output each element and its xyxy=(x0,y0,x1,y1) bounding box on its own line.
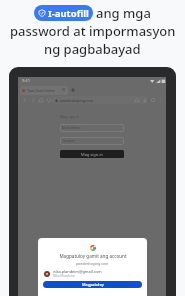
button[interactable]: Downloads xyxy=(141,96,149,104)
staticText: 9:41 xyxy=(22,78,30,83)
staticText: pwedeshoping.com xyxy=(76,261,109,266)
button[interactable]: Profile xyxy=(149,96,157,104)
other: New tab xyxy=(71,88,75,92)
button[interactable]: n xyxy=(44,269,141,278)
staticText: Magpatuloy gamit ang account xyxy=(59,253,127,259)
staticText: I-autofill xyxy=(48,7,89,20)
button[interactable]: pwedeshoping.com xyxy=(52,96,148,104)
button[interactable]: Home xyxy=(37,96,45,104)
button[interactable]: Bookmark xyxy=(133,96,141,104)
staticText: Email address xyxy=(62,126,81,130)
staticText: n xyxy=(46,272,48,276)
staticText: Mag sign-in xyxy=(60,114,79,119)
button[interactable]: Tawi-Tawi Online xyxy=(20,86,68,95)
staticText: Password xyxy=(62,139,75,143)
button[interactable]: Email address xyxy=(60,124,124,132)
staticText: Nika Plandeim xyxy=(53,274,75,278)
button[interactable]: Mag sign-in xyxy=(60,150,124,158)
button[interactable]: Back xyxy=(21,96,29,104)
staticText: Magpatuloy xyxy=(82,282,104,287)
button[interactable]: Magpatuloy xyxy=(43,281,142,288)
button[interactable]: Reload xyxy=(45,96,53,104)
staticText: Mag sign-in xyxy=(81,152,104,157)
staticText: nika.plandeim@gmail.com xyxy=(53,269,102,274)
staticText: password at impormasyon xyxy=(10,22,176,40)
button[interactable]: I-autofill xyxy=(34,5,93,21)
staticText: pwedeshoping.com xyxy=(60,98,94,103)
staticText: ang mga xyxy=(96,4,151,22)
other: Close tab xyxy=(62,88,65,91)
staticText: ng pagbabayad xyxy=(44,40,141,58)
staticText: Tawi-Tawi Online xyxy=(27,88,56,93)
button[interactable]: Forward xyxy=(29,96,37,104)
button[interactable]: Password xyxy=(60,137,124,145)
